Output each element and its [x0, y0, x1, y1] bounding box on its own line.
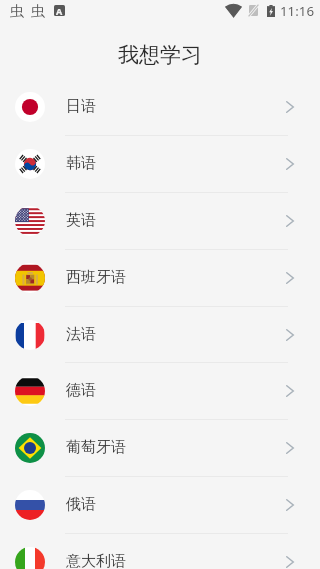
staticText: 西班牙语 — [66, 268, 126, 287]
staticText: 11:16 — [280, 2, 314, 20]
button[interactable]: 法语 — [0, 306, 320, 363]
staticText: 虫 — [10, 2, 25, 20]
staticText: 韩语 — [66, 154, 96, 173]
button[interactable]: 日语 — [0, 78, 320, 135]
staticText: 英语 — [66, 211, 96, 230]
staticText: A — [56, 5, 63, 16]
staticText: 德语 — [66, 381, 96, 400]
staticText: 葡萄牙语 — [66, 438, 126, 457]
button[interactable]: 意大利语 — [0, 533, 320, 569]
button[interactable]: 韩语 — [0, 135, 320, 192]
button[interactable]: 德语 — [0, 362, 320, 419]
staticText: 意大利语 — [66, 552, 126, 569]
staticText: 日语 — [66, 97, 96, 116]
staticText: 俄语 — [66, 495, 96, 514]
button[interactable]: 葡萄牙语 — [0, 419, 320, 476]
button[interactable]: 俄语 — [0, 476, 320, 533]
button[interactable]: 西班牙语 — [0, 249, 320, 306]
staticText: 虫 — [31, 2, 46, 20]
staticText: 法语 — [66, 325, 96, 344]
button[interactable]: 英语 — [0, 192, 320, 249]
staticText: 我想学习 — [118, 42, 202, 68]
